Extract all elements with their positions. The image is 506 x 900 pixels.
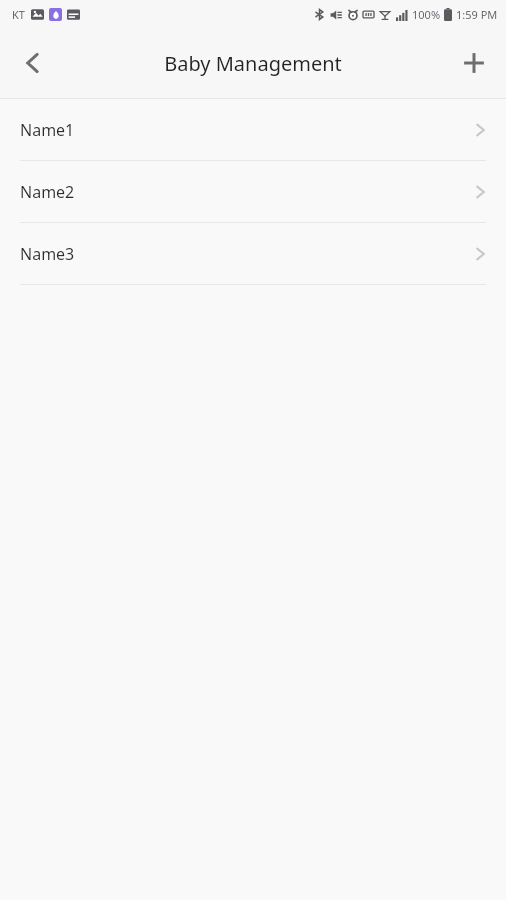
button[interactable]: Name2 <box>0 161 506 222</box>
button[interactable]: Back <box>0 28 66 98</box>
button[interactable]: Add baby <box>442 28 506 98</box>
staticText: Name1 <box>20 119 75 141</box>
staticText: Baby Management <box>164 50 342 77</box>
staticText: 1:59 PM <box>456 7 498 22</box>
staticText: Name3 <box>20 243 75 265</box>
staticText: 100% <box>412 7 441 22</box>
staticText: KT <box>12 7 25 22</box>
button[interactable]: Name1 <box>0 99 506 160</box>
button[interactable]: Name3 <box>0 223 506 284</box>
staticText: Name2 <box>20 181 75 203</box>
